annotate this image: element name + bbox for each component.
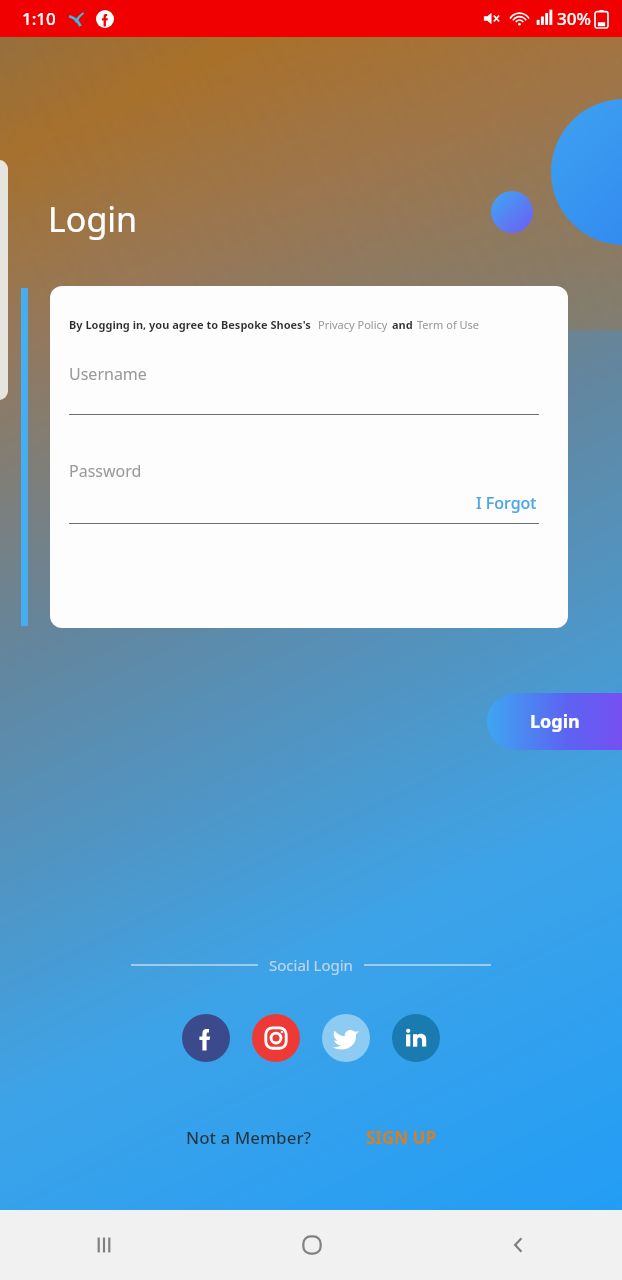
button[interactable]: Privacy Policy bbox=[318, 317, 388, 332]
staticText: 30% bbox=[557, 7, 591, 30]
staticText: By Logging in, you agree to Bespoke Shoe… bbox=[69, 317, 311, 332]
button[interactable]: Not a Member? bbox=[182, 1122, 316, 1153]
button[interactable]: SIGN UP bbox=[362, 1122, 440, 1153]
staticText: Privacy Policy bbox=[318, 317, 388, 332]
button[interactable]: Back bbox=[415, 1210, 622, 1280]
staticText: and bbox=[392, 317, 413, 332]
staticText: Social Login bbox=[269, 955, 353, 975]
staticText: Login bbox=[530, 709, 580, 734]
button[interactable]: Login bbox=[487, 693, 622, 750]
button[interactable]: Home bbox=[208, 1210, 415, 1280]
staticText: 1:10 bbox=[22, 7, 56, 30]
button[interactable]: I Forgot bbox=[474, 490, 539, 516]
button[interactable]: Facebook bbox=[182, 1014, 230, 1062]
button[interactable]: Instagram bbox=[252, 1014, 300, 1062]
staticText: Password bbox=[69, 460, 142, 482]
staticText: Username bbox=[69, 363, 147, 385]
button[interactable]: LinkedIn bbox=[392, 1014, 440, 1062]
button[interactable]: Password bbox=[69, 460, 539, 524]
button[interactable]: Term of Use bbox=[417, 317, 480, 332]
staticText: Term of Use bbox=[417, 317, 480, 332]
staticText: Login bbox=[48, 196, 138, 242]
staticText: SIGN UP bbox=[366, 1126, 436, 1149]
staticText: I Forgot bbox=[476, 492, 537, 514]
button[interactable]: Username bbox=[69, 363, 539, 415]
button[interactable]: Twitter bbox=[322, 1014, 370, 1062]
button[interactable]: Recent apps bbox=[0, 1210, 208, 1280]
staticText: Not a Member? bbox=[186, 1126, 312, 1149]
